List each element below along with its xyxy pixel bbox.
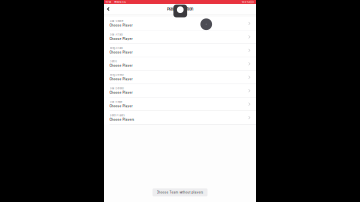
button[interactable]: Back [104, 4, 114, 14]
staticText: Player Selection [167, 7, 193, 11]
staticText: Choose Player [109, 51, 132, 54]
staticText: Choose Player [109, 104, 132, 108]
button[interactable]: Centre [104, 57, 256, 71]
staticText: Choose Player [109, 77, 132, 81]
staticText: Goal Keeper [109, 100, 122, 103]
staticText: Wing Defence [109, 73, 123, 76]
button[interactable]: Wing Defence [104, 71, 256, 84]
staticText: Goal Shooter [109, 20, 123, 23]
staticText: 11:18 [105, 0, 111, 4]
button[interactable]: Goal Keeper [104, 98, 256, 111]
staticText: Centre [109, 60, 116, 63]
button[interactable]: Wing Attack [104, 44, 256, 57]
staticText: Choose Player [109, 37, 132, 41]
staticText: Choose Player [109, 64, 132, 67]
staticText: Choose Player [109, 24, 132, 27]
button[interactable]: Bench Players [104, 111, 256, 124]
button[interactable]: Goal Attack [104, 30, 256, 44]
button[interactable]: Goal Defence [104, 84, 256, 97]
staticText: Goal Attack [109, 33, 122, 36]
staticText: Choose Player [109, 91, 132, 94]
staticText: Telstra 4G [114, 0, 126, 4]
staticText: Choose Team without players [156, 191, 203, 194]
staticText: Bench Players [109, 114, 124, 117]
button[interactable]: Goal Shooter [104, 17, 256, 30]
staticText: Choose Players [109, 118, 134, 121]
staticText: Wing Attack [109, 47, 122, 49]
button[interactable]: Choose Team without players [152, 188, 207, 196]
staticText: 100% [242, 0, 249, 4]
staticText: Goal Defence [109, 87, 123, 90]
